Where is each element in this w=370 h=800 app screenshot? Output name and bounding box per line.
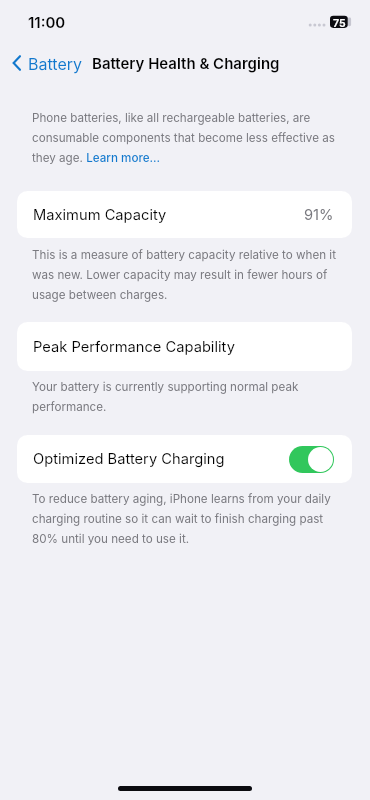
button[interactable]: Optimized Battery Charging <box>17 435 352 483</box>
staticText: Optimized Battery Charging <box>33 450 225 468</box>
staticText: Battery <box>28 54 82 73</box>
button[interactable]: Peak Performance Capability <box>17 322 352 371</box>
button[interactable]: Optimized Battery Charging <box>289 446 334 473</box>
staticText: Your battery is currently supporting nor… <box>32 375 343 415</box>
staticText: Peak Performance Capability <box>33 338 235 356</box>
staticText: This is a measure of battery capacity re… <box>32 243 343 303</box>
staticText: Battery Health & Charging <box>92 54 280 72</box>
staticText: 75 <box>333 17 346 30</box>
staticText: 91% <box>304 206 334 224</box>
staticText: Phone batteries, like all rechargeable b… <box>32 106 337 166</box>
staticText: To reduce battery aging, iPhone learns f… <box>32 487 343 547</box>
staticText: Maximum Capacity <box>33 206 167 224</box>
button[interactable]: Battery <box>9 50 82 76</box>
button[interactable]: Maximum Capacity <box>17 191 352 238</box>
staticText: 11:00 <box>28 13 66 31</box>
